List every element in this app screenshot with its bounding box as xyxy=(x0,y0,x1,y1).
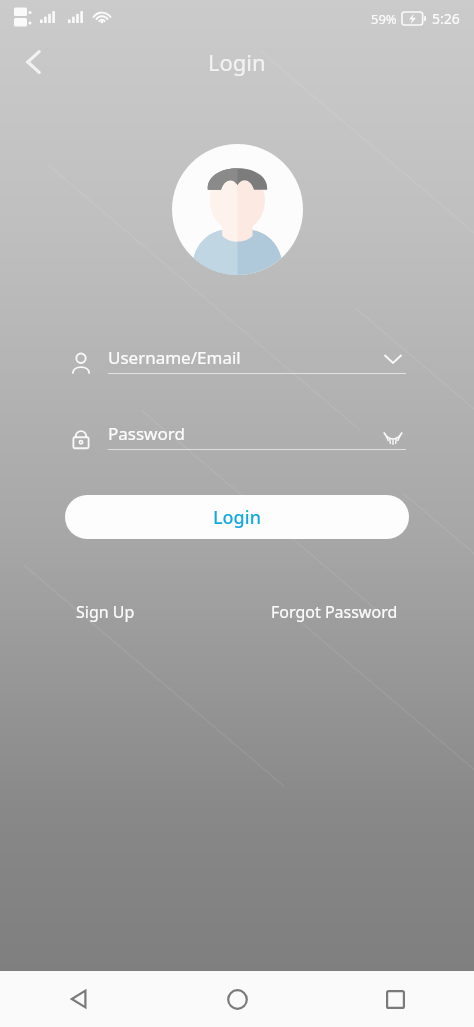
button[interactable]: Sign Up xyxy=(66,595,145,629)
button[interactable]: Profile picture xyxy=(172,144,303,275)
button[interactable]: Login xyxy=(65,495,409,539)
staticText: Login xyxy=(213,505,261,530)
button[interactable]: Show account list xyxy=(380,346,406,372)
button[interactable]: Home xyxy=(158,971,316,1027)
button[interactable]: Username/Email xyxy=(70,341,406,385)
button[interactable]: Recent apps xyxy=(316,971,474,1027)
button[interactable]: Show password xyxy=(380,422,406,448)
button[interactable]: Password xyxy=(70,417,406,461)
button[interactable]: Back xyxy=(0,971,158,1027)
staticText: 59% xyxy=(371,10,397,28)
staticText: Sign Up xyxy=(76,601,135,623)
button[interactable]: Forgot Password xyxy=(261,595,408,629)
staticText: 5:26 xyxy=(432,9,460,28)
staticText: Username/Email xyxy=(108,346,241,369)
staticText: Password xyxy=(108,422,185,445)
staticText: Forgot Password xyxy=(271,601,398,623)
staticText: Login xyxy=(208,47,266,77)
button[interactable]: Back xyxy=(8,36,60,88)
